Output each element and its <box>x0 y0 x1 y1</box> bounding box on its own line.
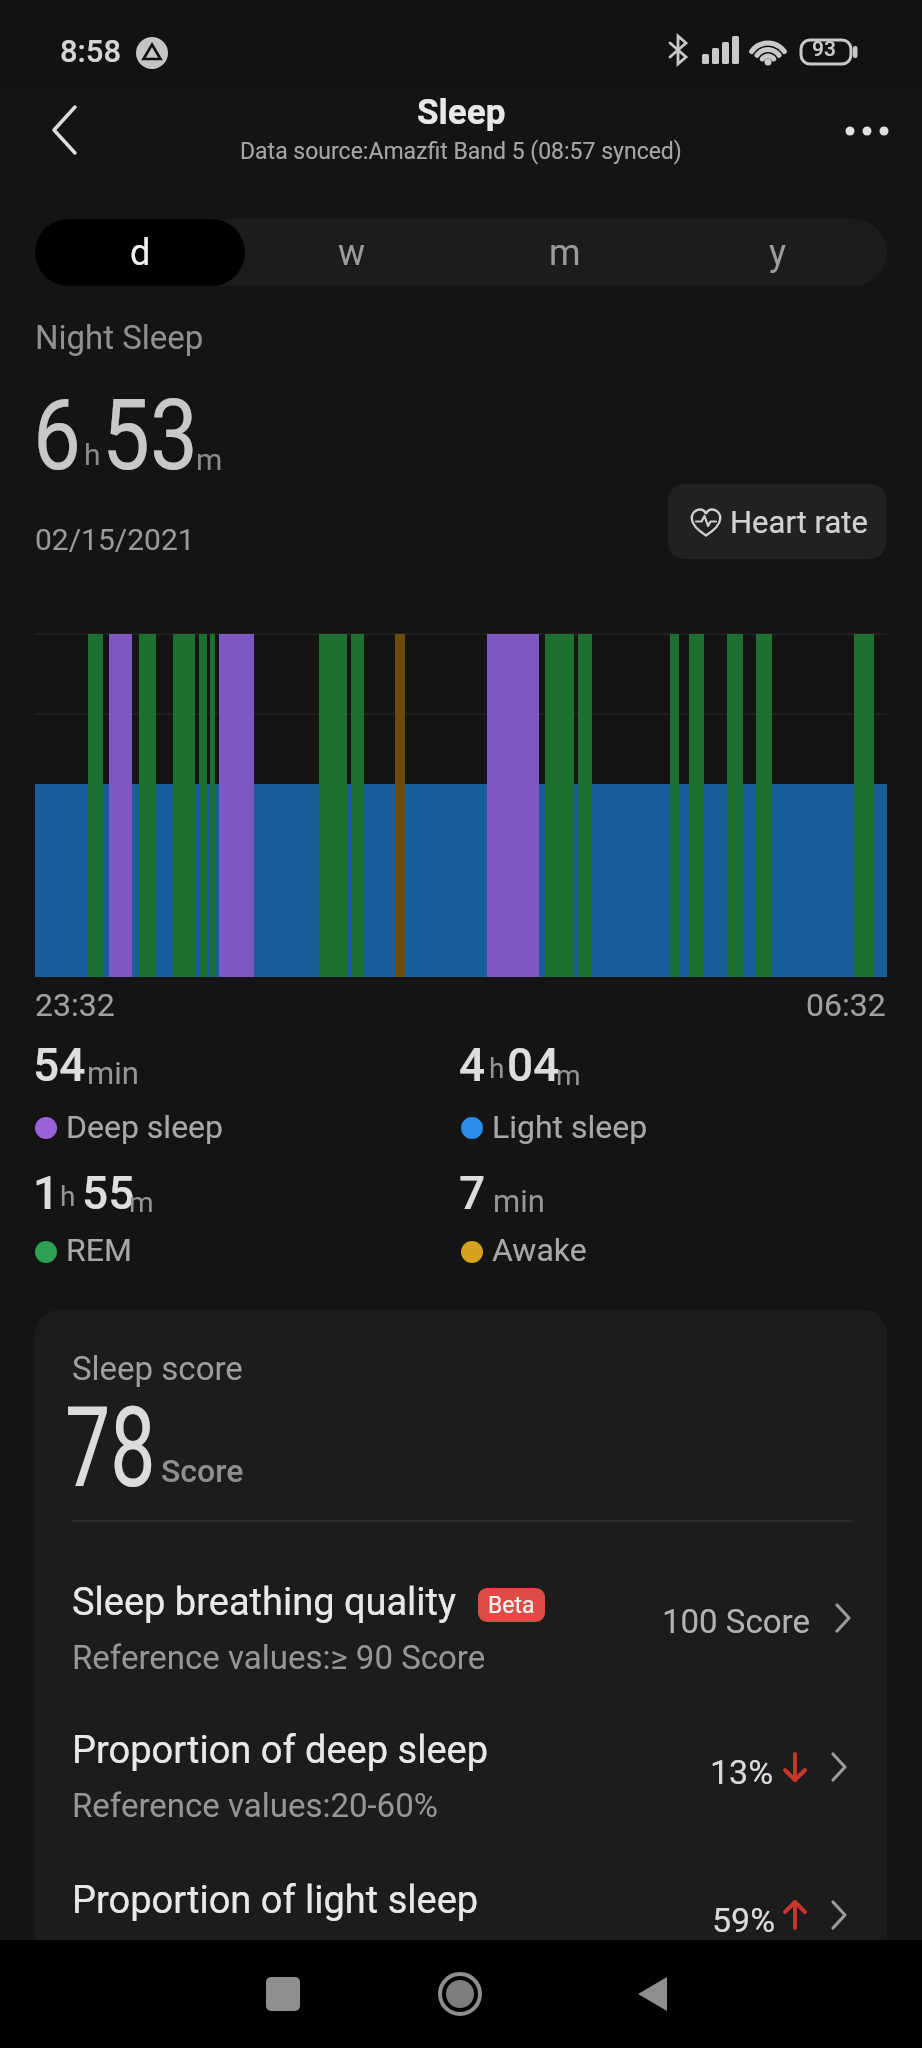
button[interactable]: Proportion of light sleep <box>35 1850 887 1970</box>
staticText: h <box>489 1052 505 1085</box>
staticText: 23:32 <box>35 986 115 1024</box>
staticText: d <box>130 232 151 274</box>
staticText: Beta <box>488 1592 535 1619</box>
staticText: Sleep score <box>72 1349 243 1388</box>
staticText: min <box>493 1183 545 1219</box>
button[interactable] <box>413 1949 507 2039</box>
button[interactable]: m <box>458 219 671 286</box>
staticText: y <box>769 232 787 274</box>
staticText: 78 <box>65 1382 156 1513</box>
staticText: Heart rate <box>730 504 868 540</box>
staticText: REM <box>66 1231 132 1269</box>
staticText: m <box>556 1059 581 1092</box>
button[interactable]: d <box>35 219 245 286</box>
staticText: m <box>549 232 581 274</box>
staticText: 55 <box>82 1166 135 1220</box>
staticText: Reference values:20-60% <box>72 1786 438 1825</box>
staticText: w <box>338 232 366 274</box>
staticText: 53 <box>102 378 199 493</box>
staticText: 54 <box>33 1038 86 1092</box>
staticText: m <box>196 442 223 477</box>
button[interactable] <box>236 1949 330 2039</box>
staticText: 04 <box>507 1038 560 1092</box>
staticText: Proportion of light sleep <box>72 1878 479 1923</box>
staticText: h <box>60 1180 76 1213</box>
button[interactable] <box>30 95 100 165</box>
staticText: Data source:Amazfit Band 5 (08:57 synced… <box>240 138 682 165</box>
staticText: min <box>87 1055 139 1091</box>
staticText: Reference values:≥ 90 Score <box>72 1638 486 1677</box>
staticText: 7 <box>459 1166 486 1220</box>
staticText: Sleep breathing quality <box>72 1580 457 1625</box>
staticText: 4 <box>459 1038 486 1092</box>
staticText: 02/15/2021 <box>35 522 195 557</box>
staticText: Deep sleep <box>66 1108 224 1146</box>
staticText: m <box>129 1186 154 1219</box>
button[interactable] <box>607 1949 701 2039</box>
staticText: 1 <box>33 1166 60 1220</box>
button[interactable]: y <box>671 219 884 286</box>
button[interactable]: Sleep breathing quality <box>35 1550 887 1680</box>
staticText: 93 <box>812 37 836 62</box>
staticText: Sleep <box>417 92 506 133</box>
button[interactable]: Heart rate <box>668 484 886 559</box>
staticText: 8:58 <box>60 33 122 69</box>
staticText: 13% <box>710 1752 774 1792</box>
staticText: 100 Score <box>662 1602 810 1641</box>
staticText: Night Sleep <box>35 318 204 357</box>
button[interactable]: w <box>245 219 458 286</box>
staticText: Score <box>161 1452 244 1490</box>
staticText: h <box>84 437 101 472</box>
staticText: 06:32 <box>806 986 886 1024</box>
staticText: 6 <box>33 378 82 493</box>
staticText: Awake <box>492 1231 587 1269</box>
staticText: 59% <box>712 1900 776 1940</box>
button[interactable]: Proportion of deep sleep <box>35 1700 887 1830</box>
staticText: Light sleep <box>492 1108 648 1146</box>
staticText: Proportion of deep sleep <box>72 1728 489 1773</box>
button[interactable] <box>830 105 910 157</box>
